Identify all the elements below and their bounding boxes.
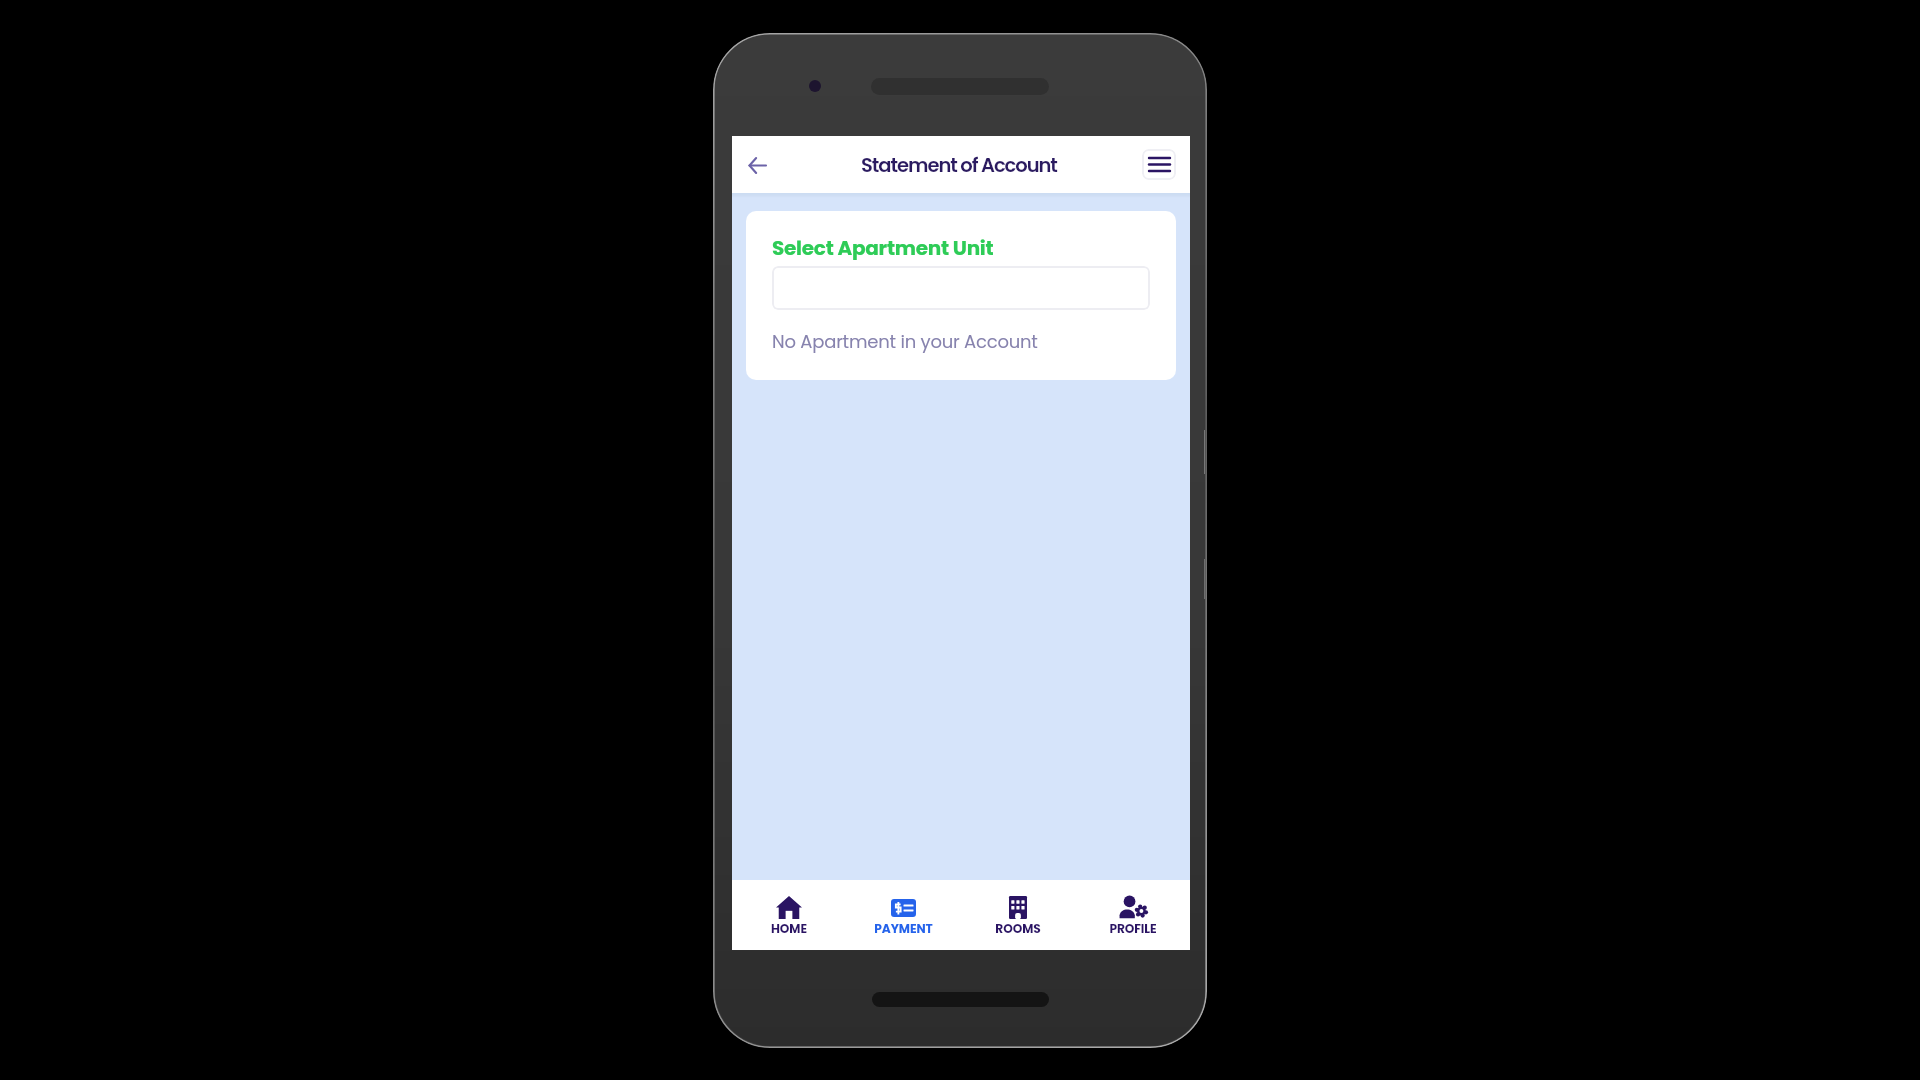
- button[interactable]: PAYMENT: [846, 880, 960, 950]
- button[interactable]: [772, 266, 1150, 310]
- button[interactable]: Menu: [1142, 149, 1176, 180]
- button[interactable]: Back: [735, 143, 779, 187]
- button[interactable]: PROFILE: [1075, 880, 1190, 950]
- staticText: PAYMENT: [874, 920, 933, 937]
- staticText: Statement of Account: [861, 152, 1057, 179]
- staticText: Select Apartment Unit: [772, 234, 994, 262]
- staticText: ROOMS: [995, 920, 1041, 937]
- staticText: HOME: [771, 920, 807, 937]
- button[interactable]: HOME: [732, 880, 846, 950]
- staticText: No Apartment in your Account: [772, 329, 1038, 354]
- staticText: PROFILE: [1109, 920, 1157, 937]
- button[interactable]: ROOMS: [960, 880, 1075, 950]
